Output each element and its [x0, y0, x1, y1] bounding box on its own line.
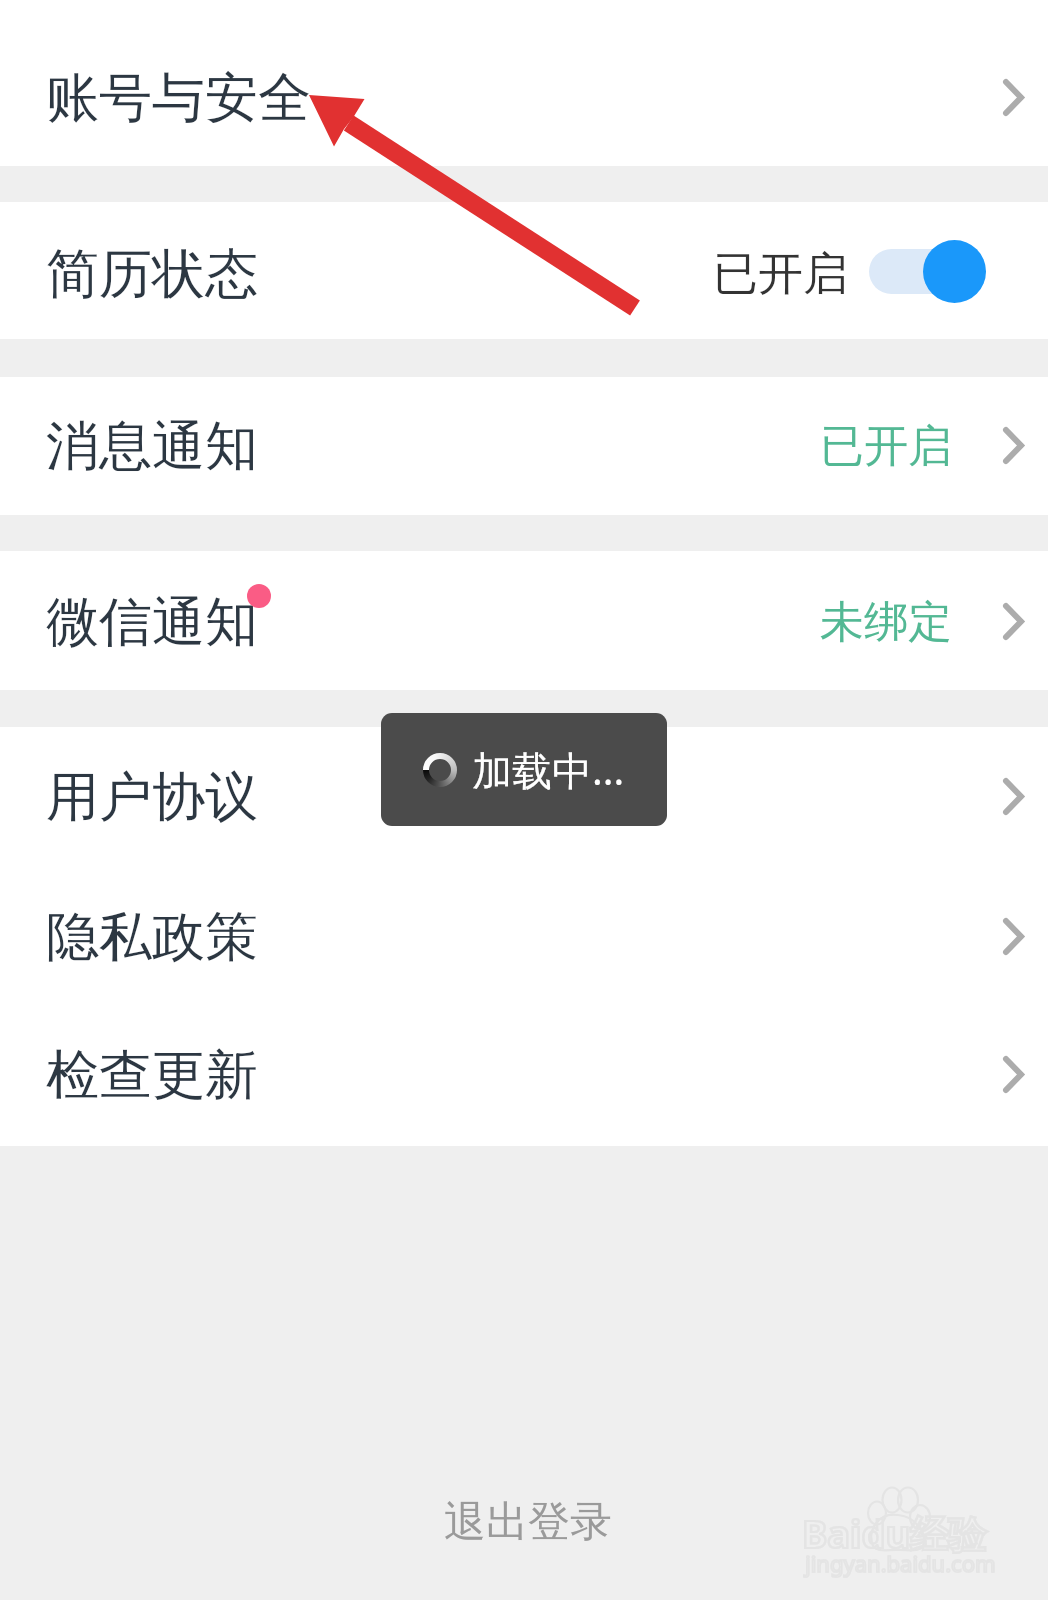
staticText: 已开启	[820, 419, 952, 474]
button[interactable]: 检查更新	[0, 1007, 1048, 1146]
staticText: 未绑定	[820, 595, 952, 650]
button[interactable]: 用户协议	[0, 727, 1048, 867]
other: Loading	[423, 753, 457, 787]
button[interactable]: 账号与安全	[0, 0, 1048, 166]
staticText: 加载中...	[472, 742, 625, 797]
staticText: Baidu经验	[802, 1507, 987, 1559]
staticText: 检查更新	[46, 1042, 258, 1109]
staticText: jingyan.baidu.com	[805, 1548, 996, 1578]
staticText: 退出登录	[444, 1496, 612, 1549]
button[interactable]: 隐私政策	[0, 867, 1048, 1007]
staticText: 消息通知	[46, 413, 258, 480]
button[interactable]: Resume status switch, on	[869, 238, 986, 304]
button[interactable]: 简历状态	[0, 202, 1048, 339]
button[interactable]: 消息通知	[0, 377, 1048, 515]
staticText: 简历状态	[46, 241, 258, 308]
staticText: 账号与安全	[46, 65, 311, 132]
staticText: 隐私政策	[46, 904, 258, 971]
staticText: 微信通知	[46, 589, 258, 656]
button[interactable]: 退出登录	[424, 1482, 632, 1563]
staticText: 用户协议	[46, 764, 258, 831]
button[interactable]: 微信通知	[0, 551, 1048, 690]
staticText: 已开启	[713, 246, 848, 303]
